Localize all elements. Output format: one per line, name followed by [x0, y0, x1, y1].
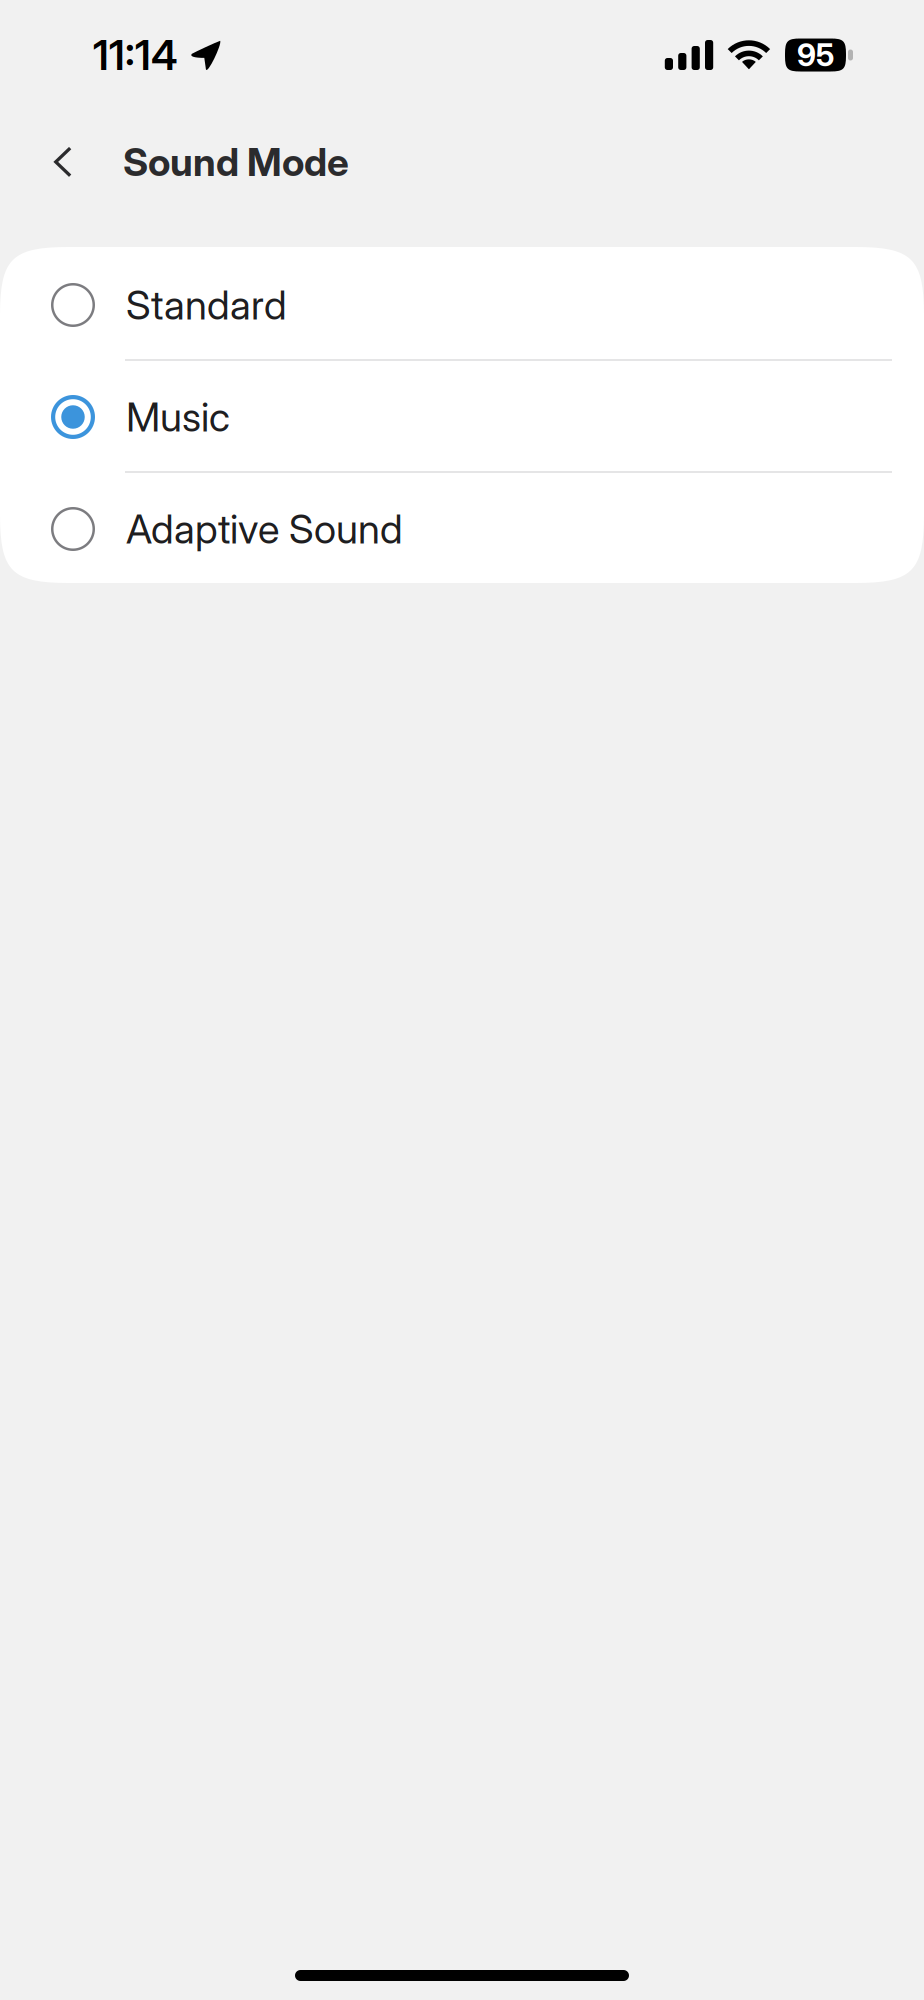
- staticText: 95: [797, 36, 834, 73]
- button[interactable]: Back: [25, 118, 101, 206]
- staticText: Music: [126, 393, 230, 441]
- button[interactable]: Standard: [0, 247, 924, 359]
- button[interactable]: Adaptive Sound: [0, 471, 924, 583]
- staticText: 11:14: [93, 30, 178, 80]
- button[interactable]: Music: [0, 359, 924, 471]
- staticText: Adaptive Sound: [126, 505, 403, 553]
- staticText: Sound Mode: [123, 139, 349, 185]
- staticText: Standard: [126, 281, 287, 329]
